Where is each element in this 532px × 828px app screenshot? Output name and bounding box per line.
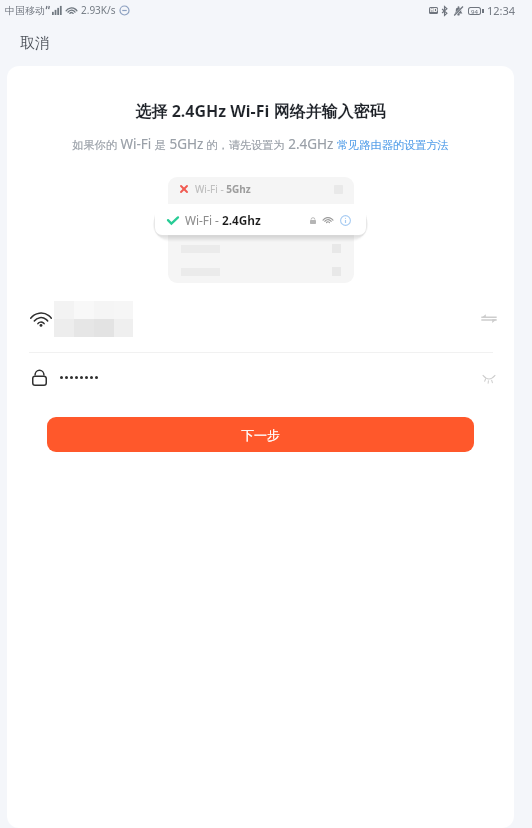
- staticText: 下一步: [241, 427, 280, 443]
- staticText: 2.93K/s: [81, 3, 116, 17]
- button[interactable]: 下一步: [47, 417, 474, 452]
- other: Switch network: [481, 312, 497, 325]
- staticText: 12:34: [487, 3, 516, 18]
- staticText: HD: [430, 7, 438, 14]
- staticText: Wi-Fi - 2.4Ghz: [185, 212, 261, 228]
- button[interactable]: Switch network: [32, 298, 497, 339]
- button[interactable]: Wi-Fi - 2.4Ghz: [155, 204, 366, 235]
- other: Show password: [483, 375, 495, 381]
- staticText: Wi-Fi - 5Ghz: [195, 182, 251, 196]
- staticText: 取消: [20, 34, 50, 53]
- button[interactable]: 取消: [14, 30, 56, 57]
- staticText: 如果你的 Wi-Fi 是 5GHz 的，请先设置为 2.4GHz 常见路由器的设…: [7, 135, 514, 153]
- staticText: 选择 2.4GHz Wi-Fi 网络并输入密码: [7, 100, 514, 122]
- staticText: 94: [471, 8, 478, 14]
- staticText: 中国移动: [5, 4, 45, 17]
- button[interactable]: Show password: [32, 353, 495, 402]
